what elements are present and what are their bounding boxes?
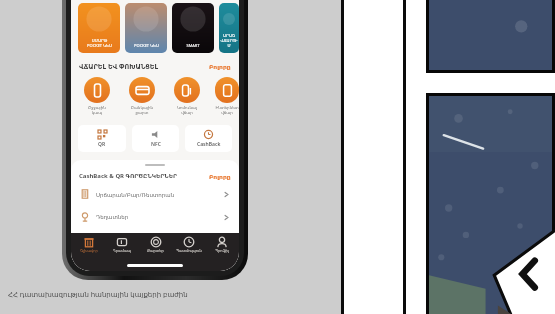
button[interactable]: ՍՄԱՐԹ POCKET ԿԵՍ bbox=[78, 3, 120, 53]
staticText: Բջջային կապ bbox=[88, 105, 106, 115]
button[interactable]: QR bbox=[78, 125, 126, 152]
staticText: Դեղատներ bbox=[96, 214, 129, 220]
button[interactable]: Քարտեր bbox=[140, 236, 171, 253]
staticText: NFC bbox=[151, 141, 161, 148]
staticText: Պատմություն bbox=[176, 249, 202, 253]
staticText: Բանկային քարտ bbox=[131, 105, 153, 115]
staticText: POCKET ԿԵՍ bbox=[134, 43, 159, 48]
button[interactable]: Պատմություն bbox=[173, 236, 204, 253]
button[interactable]: Բանկային քարտ bbox=[125, 77, 159, 115]
button[interactable]: Ինտերնետ վճար bbox=[215, 77, 239, 115]
button[interactable]: Դրամապ bbox=[106, 236, 137, 253]
staticText: Ինտերնետ վճար bbox=[215, 105, 239, 115]
staticText: Պրոֆիլ bbox=[215, 249, 229, 253]
button[interactable]: CashBack bbox=[185, 125, 232, 152]
staticText: Սրճարան/Բար/Ռեստորան bbox=[96, 191, 175, 198]
staticText: Գլխավոր bbox=[80, 249, 98, 253]
button[interactable]: Կոմունալ վճար bbox=[170, 77, 204, 115]
staticText: Բոլորը bbox=[209, 63, 231, 70]
staticText: Բոլորը bbox=[209, 173, 231, 180]
button[interactable]: Բջջային կապ bbox=[80, 77, 114, 115]
staticText: ՎՃԱՐԵԼ ԵՎ ՓՈԽԱՆՑԵԼ bbox=[79, 62, 159, 71]
button[interactable]: POCKET ԿԵՍ bbox=[125, 3, 167, 53]
staticText: ԱՐԱԳ ՎՃԱՐՈՒՄ bbox=[219, 33, 239, 48]
staticText: CashBack bbox=[197, 141, 221, 148]
button[interactable]: Բոլորը bbox=[209, 173, 231, 180]
button[interactable]: Գլխավոր bbox=[73, 236, 104, 253]
button[interactable]: Դեղատներ bbox=[71, 210, 239, 224]
staticText: SMART bbox=[186, 43, 200, 48]
staticText: ՍՄԱՐԹ POCKET ԿԵՍ bbox=[87, 38, 112, 48]
button[interactable]: Բոլորը bbox=[209, 63, 231, 70]
staticText: ՀՀ դատախազության հանրային կայքերի բաժին bbox=[8, 290, 188, 300]
staticText: CashBack & QR ԳՈՐԾԸՆԿԵՐՆԵՐ bbox=[79, 172, 178, 180]
button[interactable]: SMART bbox=[172, 3, 214, 53]
button[interactable]: ԱՐԱԳ ՎՃԱՐՈՒՄ bbox=[219, 3, 239, 53]
button[interactable]: Պրոֆիլ bbox=[206, 236, 237, 253]
staticText: Դրամապ bbox=[113, 249, 131, 253]
button[interactable]: Սրճարան/Բար/Ռեստորան bbox=[71, 187, 239, 201]
staticText: Քարտեր bbox=[147, 249, 164, 253]
button[interactable]: NFC bbox=[132, 125, 179, 152]
staticText: QR bbox=[98, 141, 106, 148]
staticText: Կոմունալ վճար bbox=[177, 105, 197, 115]
